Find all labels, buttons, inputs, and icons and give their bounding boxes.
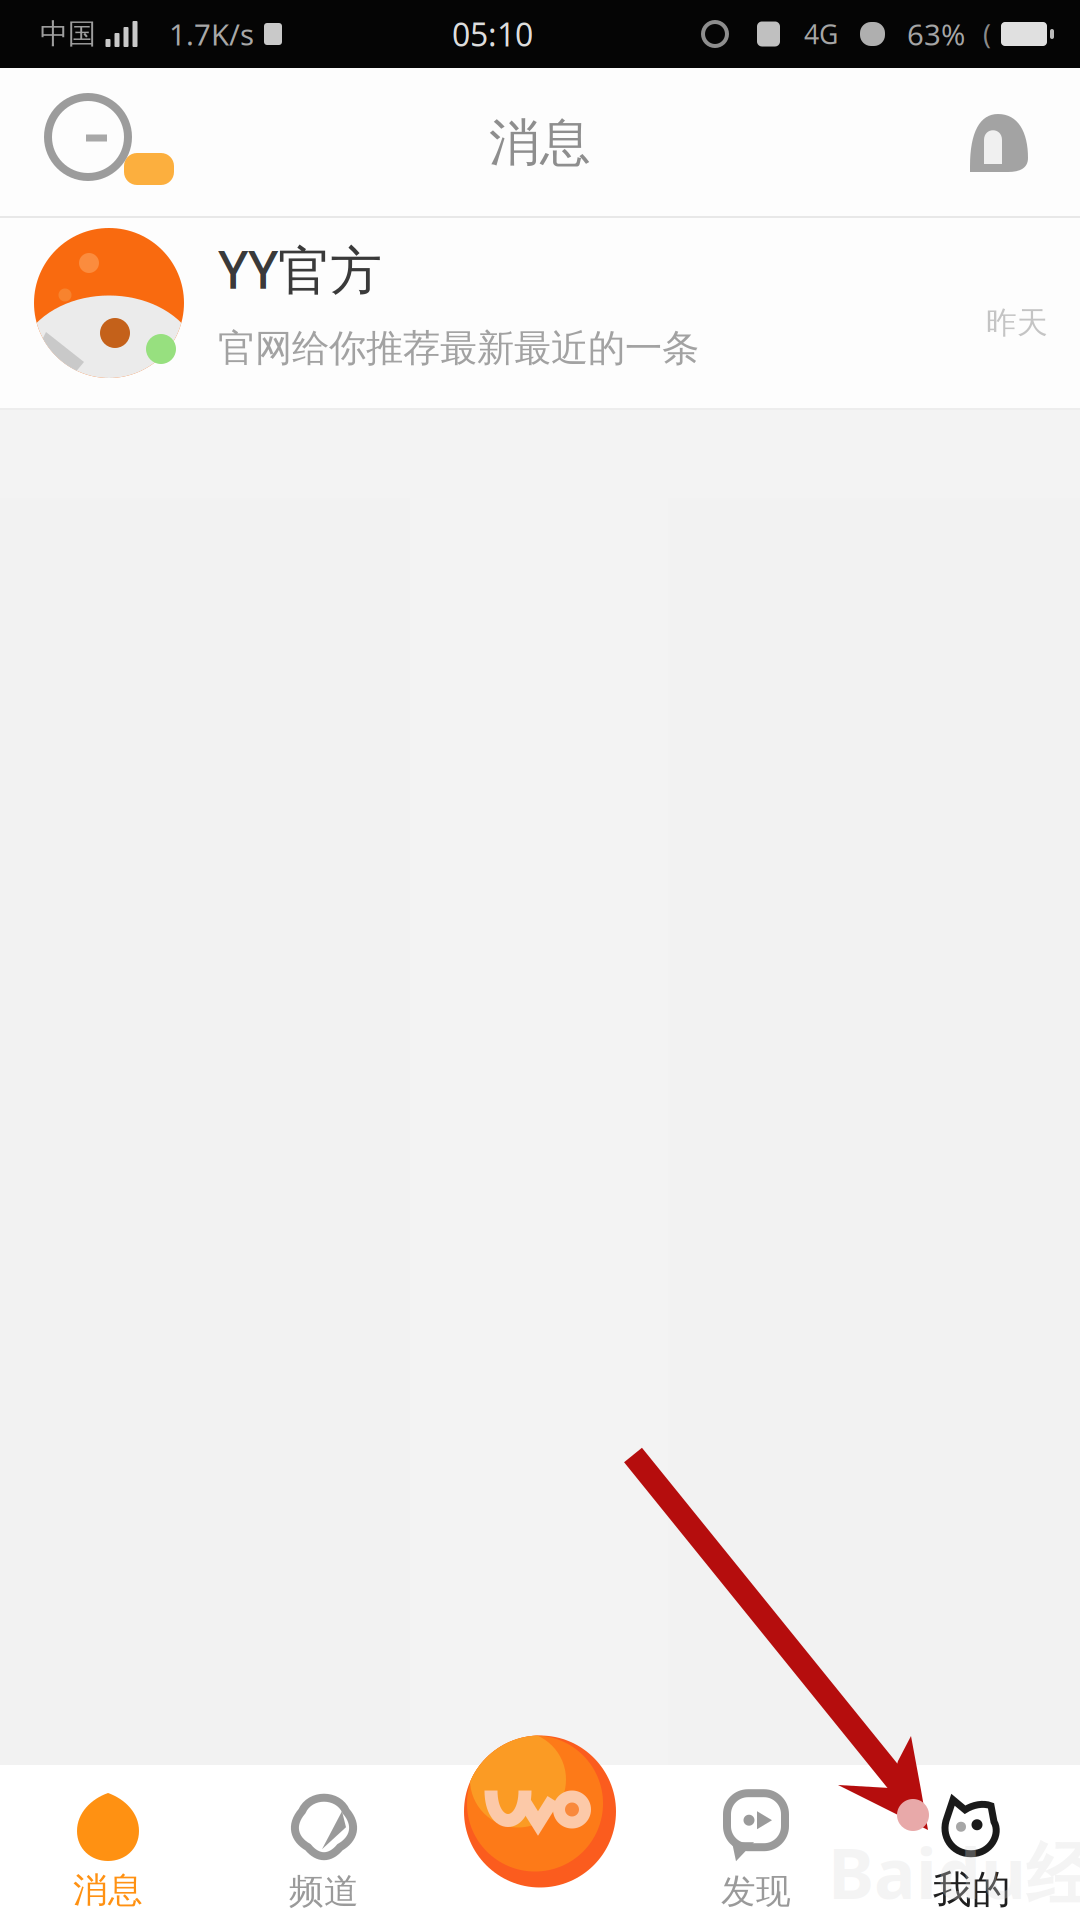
- staticText: 1.7K/s: [169, 14, 254, 53]
- staticText: 官网给你推荐最新最近的一条: [218, 325, 699, 371]
- staticText: 消息: [73, 1869, 143, 1912]
- staticText: 我的: [933, 1866, 1011, 1913]
- button[interactable]: 搜索: [0, 68, 196, 218]
- staticText: Baidu经验: [828, 1826, 1080, 1918]
- staticText: 05:10: [452, 13, 533, 55]
- button[interactable]: 发现: [648, 1765, 864, 1920]
- button[interactable]: 消息: [0, 1765, 216, 1920]
- button[interactable]: YY 开播: [464, 1735, 616, 1887]
- staticText: 63%: [907, 14, 965, 53]
- button[interactable]: 我的: [864, 1765, 1080, 1920]
- staticText: 中国: [40, 17, 96, 51]
- staticText: 昨天: [986, 304, 1048, 342]
- staticText: 消息: [489, 112, 591, 174]
- button[interactable]: 频道: [216, 1765, 432, 1920]
- button[interactable]: 联系人: [944, 68, 1080, 218]
- staticText: 4G: [804, 16, 838, 52]
- staticText: 频道: [289, 1870, 359, 1913]
- staticText: 发现: [721, 1870, 791, 1913]
- staticText: (: [983, 16, 991, 52]
- button[interactable]: YY官方: [0, 218, 1080, 410]
- staticText: YY官方: [218, 234, 382, 303]
